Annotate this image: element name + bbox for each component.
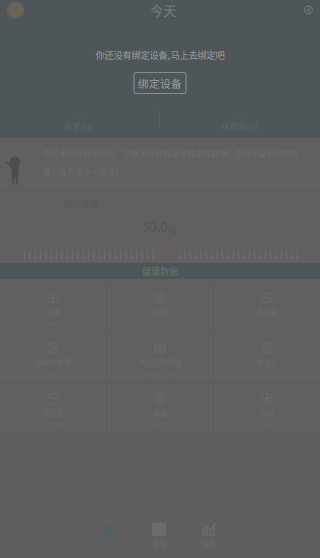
button[interactable]: 绑定设备 <box>134 72 186 93</box>
staticText: 体重(kg) <box>64 120 95 132</box>
staticText: 发现 <box>151 538 167 549</box>
button[interactable]: 发现 <box>134 519 184 553</box>
staticText: 今天 <box>150 1 176 19</box>
staticText: 首页 <box>101 538 117 549</box>
staticText: 体脂率(%) <box>221 120 258 132</box>
staticText: 重，每天进步一点点！ <box>43 166 123 177</box>
button[interactable]: 首页 <box>84 519 134 553</box>
staticText: 50.0 <box>142 216 167 236</box>
staticText: 健康数据 <box>142 264 178 278</box>
button[interactable]: Settings <box>304 5 313 14</box>
button[interactable]: Profile <box>8 2 23 17</box>
staticText: 绑定设备 <box>138 75 182 91</box>
staticText: 你还未进行首次测量，空腹上秤获取身体健康数据哦！坚持记录自己的体 <box>43 147 299 159</box>
staticText: kg <box>168 223 177 235</box>
staticText: 你还没有绑定设备,马上去绑定吧 <box>95 48 224 61</box>
staticText: 报告 <box>201 538 217 550</box>
